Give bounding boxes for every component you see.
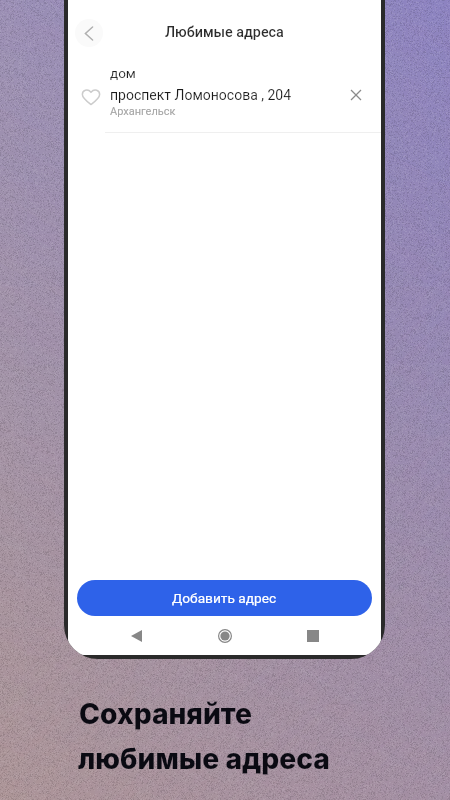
staticText: Любимые адреса [165,24,284,41]
button[interactable]: Недавние [297,620,329,652]
staticText: Добавить адрес [172,590,277,606]
button[interactable]: Удалить адрес [342,81,370,109]
staticText: дом [110,65,136,81]
staticText: любимые адреса [78,742,330,776]
button[interactable]: Назад [75,19,103,47]
button[interactable]: Добавить адрес [77,580,372,616]
staticText: Архангельск [110,105,176,118]
staticText: проспект Ломоносова , 204 [110,87,292,103]
button[interactable]: дом [68,64,381,132]
button[interactable]: Домой [209,620,241,652]
button[interactable]: Назад [120,620,152,652]
staticText: Сохраняйте [79,697,252,731]
